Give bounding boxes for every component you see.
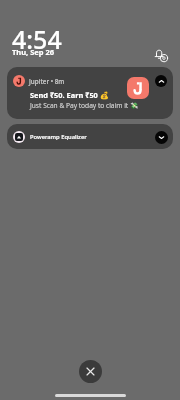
- button[interactable]: Jupiter • 8m: [7, 67, 173, 119]
- staticText: Jupiter • 8m: [29, 77, 65, 86]
- button[interactable]: Collapse notification: [155, 75, 167, 87]
- button[interactable]: Close: [79, 360, 102, 383]
- staticText: Just Scan & Pay today to claim it 💸: [30, 101, 139, 110]
- button[interactable]: Expand notification: [155, 131, 168, 144]
- staticText: 4:54: [12, 22, 62, 56]
- button[interactable]: Poweramp Equalizer: [7, 124, 173, 149]
- staticText: Thu, Sep 26: [12, 47, 55, 57]
- staticText: Send ₹50. Earn ₹50 💰: [30, 90, 109, 100]
- button[interactable]: Notification settings: [153, 47, 170, 64]
- staticText: Poweramp Equalizer: [30, 133, 87, 141]
